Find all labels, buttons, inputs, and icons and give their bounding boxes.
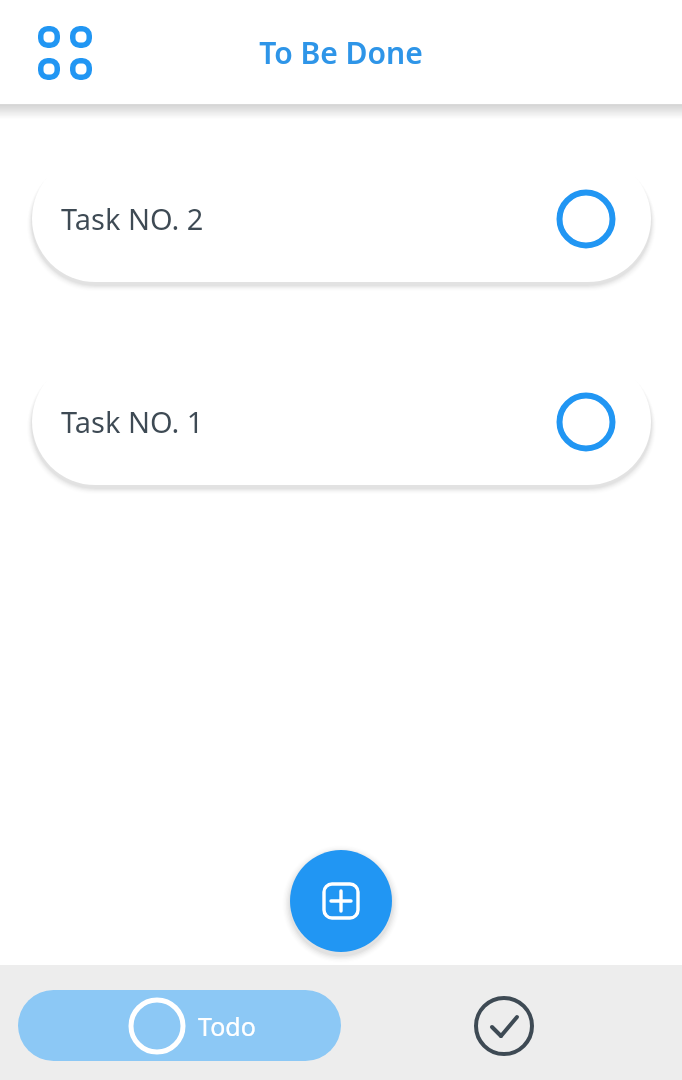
button[interactable]: Categories <box>30 18 100 88</box>
staticText: Task NO. 1 <box>61 402 204 441</box>
staticText: To Be Done <box>0 32 682 73</box>
button[interactable]: Mark done <box>557 393 615 451</box>
button[interactable]: Done <box>440 990 568 1061</box>
button[interactable]: Mark done <box>557 190 615 248</box>
button[interactable]: Add task <box>289 849 393 953</box>
button[interactable]: Todo <box>18 990 341 1061</box>
button[interactable]: Task NO. 1 <box>32 358 651 485</box>
staticText: Task NO. 2 <box>61 199 204 238</box>
button[interactable]: Task NO. 2 <box>32 155 651 282</box>
staticText: Todo <box>198 1009 256 1043</box>
